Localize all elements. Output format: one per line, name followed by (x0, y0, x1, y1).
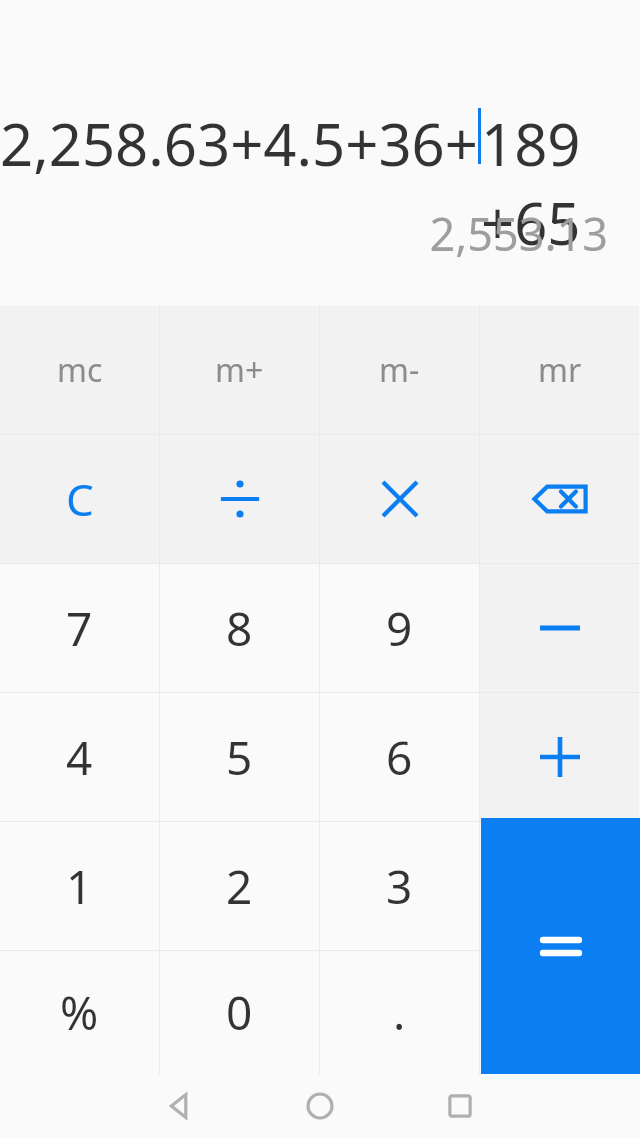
button[interactable]: 4 (0, 693, 159, 821)
staticText: 3 (386, 855, 413, 918)
button[interactable]: mc (0, 306, 159, 434)
button[interactable]: Minus (480, 564, 639, 692)
button[interactable]: Home (290, 1074, 350, 1138)
button[interactable]: 7 (0, 564, 159, 692)
staticText: C (66, 469, 94, 529)
staticText: 8 (226, 597, 253, 660)
staticText: % (60, 981, 99, 1044)
staticText: 4 (66, 726, 93, 789)
button[interactable]: m- (320, 306, 479, 434)
staticText: . (393, 981, 406, 1044)
staticText: m- (379, 348, 420, 392)
button[interactable]: mr (480, 306, 639, 434)
button[interactable]: 8 (160, 564, 319, 692)
button[interactable]: 2 (160, 822, 319, 950)
button[interactable]: Divide (160, 435, 319, 563)
button[interactable]: 0 (160, 951, 319, 1074)
staticText: 6 (386, 726, 413, 789)
staticText: 189+65 (481, 104, 611, 262)
button[interactable]: Backspace (480, 435, 639, 563)
button[interactable]: 5 (160, 693, 319, 821)
staticText: 2,258.63+4.5+36+ (0, 104, 478, 183)
button[interactable]: 9 (320, 564, 479, 692)
staticText: 2 (226, 855, 253, 918)
staticText: 2,553.13 (429, 203, 608, 264)
staticText: 1 (66, 855, 93, 918)
staticText: 7 (66, 597, 93, 660)
staticText: 9 (386, 597, 413, 660)
button[interactable]: 1 (0, 822, 159, 950)
button[interactable]: . (320, 951, 479, 1074)
staticText: mr (538, 348, 582, 392)
button[interactable]: Back (148, 1074, 208, 1138)
button[interactable]: 3 (320, 822, 479, 950)
button[interactable]: 6 (320, 693, 479, 821)
button[interactable]: Multiply (320, 435, 479, 563)
button[interactable]: % (0, 951, 159, 1074)
button[interactable]: Plus (480, 693, 639, 821)
button[interactable]: Recent apps (430, 1074, 490, 1138)
staticText: mc (57, 348, 103, 392)
staticText: m+ (215, 348, 264, 392)
button[interactable]: Equals (481, 818, 640, 1074)
staticText: 0 (226, 981, 253, 1044)
button[interactable]: m+ (160, 306, 319, 434)
staticText: 5 (226, 726, 253, 789)
button[interactable]: C (0, 435, 159, 563)
